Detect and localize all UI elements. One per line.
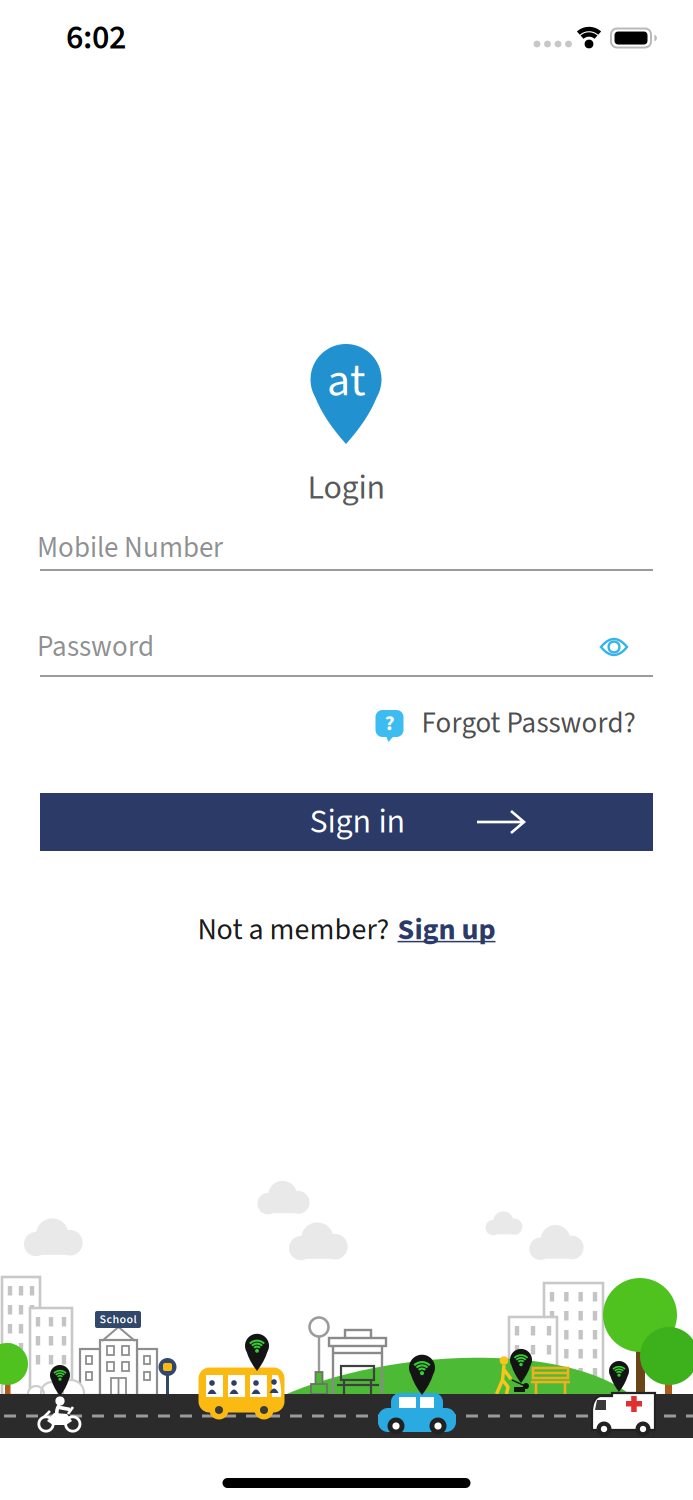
button[interactable]: Show password [592, 627, 636, 667]
staticText: Login [307, 464, 385, 512]
staticText: Mobile Number [37, 527, 223, 569]
staticText: Password [37, 626, 154, 668]
staticText: School [99, 1311, 136, 1328]
staticText: at [327, 348, 366, 414]
button[interactable]: ? [375, 703, 635, 744]
button[interactable]: Mobile Number [0, 523, 693, 573]
button[interactable]: Sign up [397, 909, 495, 951]
staticText: Sign up [397, 909, 495, 951]
staticText: Sign in [309, 798, 405, 846]
staticText: Forgot Password? [421, 703, 635, 744]
button[interactable]: Password [0, 622, 693, 672]
staticText: Not a member? [197, 909, 389, 951]
button[interactable]: Sign in [40, 793, 653, 851]
staticText: 6:02 [66, 14, 126, 62]
staticText: ? [384, 708, 394, 739]
